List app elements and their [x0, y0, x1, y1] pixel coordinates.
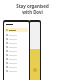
button[interactable] [6, 58, 27, 60]
button[interactable] [5, 28, 28, 32]
staticText: with Dovi [22, 9, 43, 15]
button[interactable] [6, 38, 27, 40]
button[interactable] [6, 34, 27, 36]
button[interactable] [6, 54, 27, 56]
button[interactable] [6, 70, 27, 72]
staticText: Stay organised [16, 3, 49, 9]
button[interactable] [6, 50, 27, 52]
button[interactable] [6, 46, 27, 48]
button[interactable] [6, 62, 27, 64]
button[interactable] [6, 66, 27, 68]
button[interactable] [6, 42, 27, 44]
